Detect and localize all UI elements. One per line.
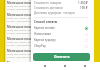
staticText: от 59 ₽ · доставим сегодня [7,55,38,58]
staticText: Молочные продукты и сыр [7,13,50,16]
staticText: Стоимость доставки [34,6,63,10]
button[interactable]: Картой курьеру [34,37,88,43]
button[interactable]: Tab [60,62,70,70]
staticText: Оплатить [54,55,70,59]
staticText: Молочные продукты и сыр [7,25,50,28]
staticText: Хлеб, сыр, масло, яйца и творог [7,28,45,31]
staticText: Доставка курьером · сегодня [34,11,75,15]
staticText: 190 ₽ [80,6,88,10]
button[interactable]: Наличными [34,31,88,37]
staticText: от 59 ₽ · доставим сегодня [7,43,38,46]
staticText: Хлеб, сыр, масло, яйца и творог [7,64,45,67]
staticText: Стоимость товаров [34,1,62,5]
button[interactable]: СберPay [34,43,88,49]
staticText: Способ оплаты [34,20,58,24]
button[interactable]: Tab [80,62,90,70]
staticText: Хлеб, сыр, масло, яйца и творог [7,16,45,19]
staticText: Молочные продукты и сыр [7,1,50,4]
button[interactable]: Tab [40,62,50,70]
staticText: Молочные продукты и сыр [7,49,50,52]
staticText: Картой курьеру [34,38,56,42]
staticText: СберPay [34,44,46,48]
button[interactable]: Картой онлайн [34,25,88,31]
button[interactable]: Оплатить [33,53,90,61]
staticText: от 59 ₽ · доставим сегодня [7,7,38,10]
staticText: Хлеб, сыр, масло, яйца и творог [7,40,45,43]
staticText: Хлеб, сыр, масло, яйца и творог [7,4,45,7]
staticText: от 59 ₽ · доставим сегодня [7,19,38,22]
staticText: 1 450 ₽ [78,1,88,5]
staticText: Молочные продукты и сыр [7,61,50,64]
staticText: Хлеб, сыр, масло, яйца и творог [7,52,45,55]
staticText: от 59 ₽ · доставим сегодня [7,31,38,34]
staticText: Наличными [34,32,51,36]
staticText: Картой онлайн [34,26,56,30]
staticText: Молочные продукты и сыр [7,37,50,40]
